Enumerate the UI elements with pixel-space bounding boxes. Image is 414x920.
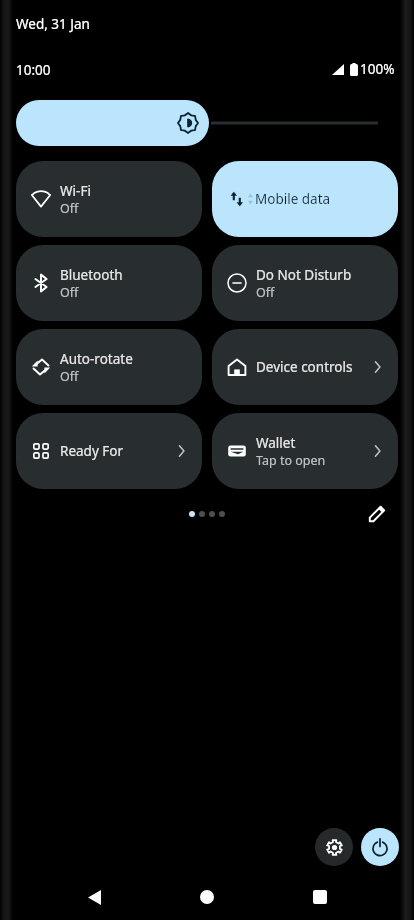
- staticText: Wi-Fi: [60, 182, 91, 200]
- staticText: 100%: [360, 60, 395, 78]
- staticText: Ready For: [60, 442, 124, 460]
- button[interactable]: Device controls: [212, 329, 398, 405]
- button[interactable]: Auto-rotate: [16, 329, 202, 405]
- staticText: Off: [60, 200, 79, 217]
- staticText: Wallet: [256, 434, 296, 452]
- button[interactable]: Edit tiles: [366, 503, 388, 525]
- staticText: 10:00: [16, 61, 51, 79]
- button[interactable]: Do Not Disturb: [212, 245, 398, 321]
- button[interactable]: Power: [361, 828, 399, 866]
- staticText: Do Not Disturb: [256, 266, 352, 284]
- staticText: Tap to open: [256, 452, 326, 469]
- button[interactable]: Bluetooth: [16, 245, 202, 321]
- button[interactable]: Brightness: [16, 100, 209, 146]
- staticText: Off: [60, 284, 79, 301]
- staticText: Auto-rotate: [60, 350, 133, 368]
- staticText: Bluetooth: [60, 266, 123, 284]
- staticText: Wed, 31 Jan: [16, 15, 90, 33]
- button[interactable]: Ready For: [16, 413, 202, 489]
- staticText: Off: [60, 368, 79, 385]
- staticText: Mobile data: [255, 190, 331, 208]
- button[interactable]: Recent apps: [304, 881, 336, 913]
- button[interactable]: Mobile data: [212, 161, 398, 237]
- button[interactable]: Wallet: [212, 413, 398, 489]
- staticText: Device controls: [256, 358, 353, 376]
- staticText: Off: [256, 284, 275, 301]
- button[interactable]: Wi-Fi: [16, 161, 202, 237]
- button[interactable]: Settings: [315, 828, 353, 866]
- button[interactable]: Back: [78, 881, 110, 913]
- button[interactable]: Home: [191, 881, 223, 913]
